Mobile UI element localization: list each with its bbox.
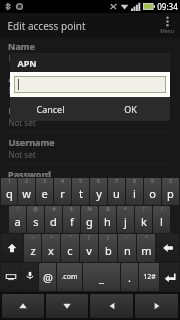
button[interactable]: Down [46,294,88,318]
staticText: w [22,186,31,201]
button[interactable]: Password [8,168,172,196]
staticText: k [141,214,147,229]
staticText: @ [33,206,38,213]
staticText: Cancel [36,103,65,115]
staticText: .com [61,272,78,282]
staticText: Menu [160,28,174,35]
staticText: o [149,186,156,201]
button[interactable]: @ [27,206,44,233]
button[interactable]: .com [57,263,82,291]
button[interactable]: $ [63,206,80,233]
button[interactable]: 9 [144,178,161,205]
staticText: Username [8,136,55,148]
button[interactable]: & [99,206,116,233]
staticText: 09:34 [157,1,178,12]
button[interactable]: + [137,234,155,262]
button[interactable]: 2 [18,178,35,205]
button[interactable]: . [121,263,138,291]
button[interactable]: ^ [42,234,60,262]
staticText: e [41,186,48,201]
button[interactable]: 8 [126,178,143,205]
button[interactable]: Up [2,294,44,318]
staticText: . [128,270,131,285]
staticText: + [145,234,148,241]
button[interactable]: Voice input [21,263,38,291]
staticText: 6 [97,178,100,185]
button[interactable]: OK [90,97,170,121]
staticText: t [79,186,83,201]
staticText: 0 [169,178,172,185]
button[interactable]: Cancel [10,97,90,121]
button[interactable]: # [45,206,62,233]
staticText: OK [124,103,137,115]
button[interactable]: Right [135,294,178,318]
staticText: m [141,243,152,258]
button[interactable]: % [81,206,98,233]
button[interactable]: ! [9,206,26,233]
staticText: 8 [133,178,136,185]
staticText: @ [43,270,53,285]
staticText: r [60,186,65,201]
staticText: Edit access point [7,19,86,33]
staticText: 12# [143,272,156,282]
button[interactable]: _ [83,263,120,291]
button[interactable]: Username [8,136,172,164]
button[interactable]: ? [135,206,152,233]
staticText: 3 [43,178,46,185]
staticText: / [161,206,163,213]
button[interactable]: 5 [72,178,89,205]
button[interactable]: Left [90,294,133,318]
button[interactable]: 7 [108,178,125,205]
staticText: 4 [61,178,64,185]
staticText: * [124,206,127,213]
button[interactable]: Proxy [8,104,172,132]
staticText: ^ [50,234,53,241]
button[interactable]: 12# [139,263,159,291]
staticText: g [86,214,93,229]
button[interactable]: Backspace [156,234,179,262]
button[interactable]: 1 [1,178,17,205]
staticText: v [86,243,92,258]
button[interactable]: Keyboard settings [1,263,20,291]
button[interactable]: Enter [160,263,179,291]
staticText: APN [8,72,28,84]
button[interactable]: @ [39,263,56,291]
button[interactable]: ) [99,234,117,262]
staticText: Proxy [8,104,34,116]
staticText: l [160,214,163,229]
staticText: Not set [8,85,36,96]
staticText: b [105,243,112,258]
button[interactable]: Menu [154,13,180,38]
button[interactable]: APN [8,72,172,100]
button[interactable]: 0 [162,178,179,205]
button[interactable] [14,76,166,93]
button[interactable]: 6 [90,178,107,205]
button[interactable]: 3 [36,178,53,205]
staticText: APN [17,57,37,69]
staticText: Not set [8,53,36,64]
staticText: p [167,186,174,201]
staticText: 7 [115,178,118,185]
button[interactable]: Shift [1,234,23,262]
button[interactable]: - [118,234,136,262]
button[interactable]: * [117,206,134,233]
staticText: _ [99,270,104,285]
staticText: 1 [8,178,11,185]
button[interactable]: ° [61,234,79,262]
button[interactable]: 4 [54,178,71,205]
button[interactable]: Name [8,40,172,68]
button[interactable]: ~ [24,234,41,262]
staticText: $ [70,206,73,213]
staticText: q [6,186,13,201]
staticText: 9 [151,178,154,185]
staticText: ( [88,234,90,241]
staticText: & [106,206,110,213]
staticText: u [113,186,120,201]
staticText: h [104,214,111,229]
staticText: f [70,214,74,229]
button[interactable]: / [153,206,170,233]
button[interactable]: ( [80,234,98,262]
staticText: x [48,243,54,258]
staticText: j [124,214,127,229]
staticText: Password [8,168,51,180]
